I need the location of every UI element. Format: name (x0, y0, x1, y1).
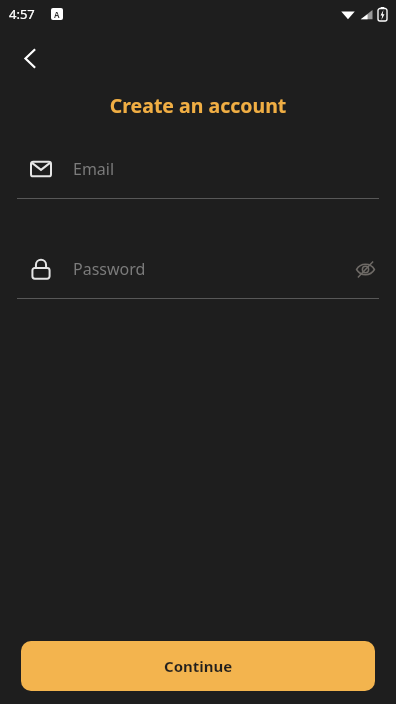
button[interactable]: Email (0, 149, 396, 199)
staticText: Email (73, 158, 379, 180)
button[interactable]: Back (8, 36, 52, 80)
staticText: Password (73, 258, 351, 280)
button[interactable]: Password (0, 249, 396, 299)
staticText: Continue (164, 656, 233, 676)
staticText: Create an account (0, 92, 396, 119)
staticText: A (54, 9, 60, 20)
button[interactable]: Show password (351, 255, 379, 283)
staticText: 4:57 (9, 5, 35, 23)
button[interactable]: Continue (21, 641, 375, 691)
